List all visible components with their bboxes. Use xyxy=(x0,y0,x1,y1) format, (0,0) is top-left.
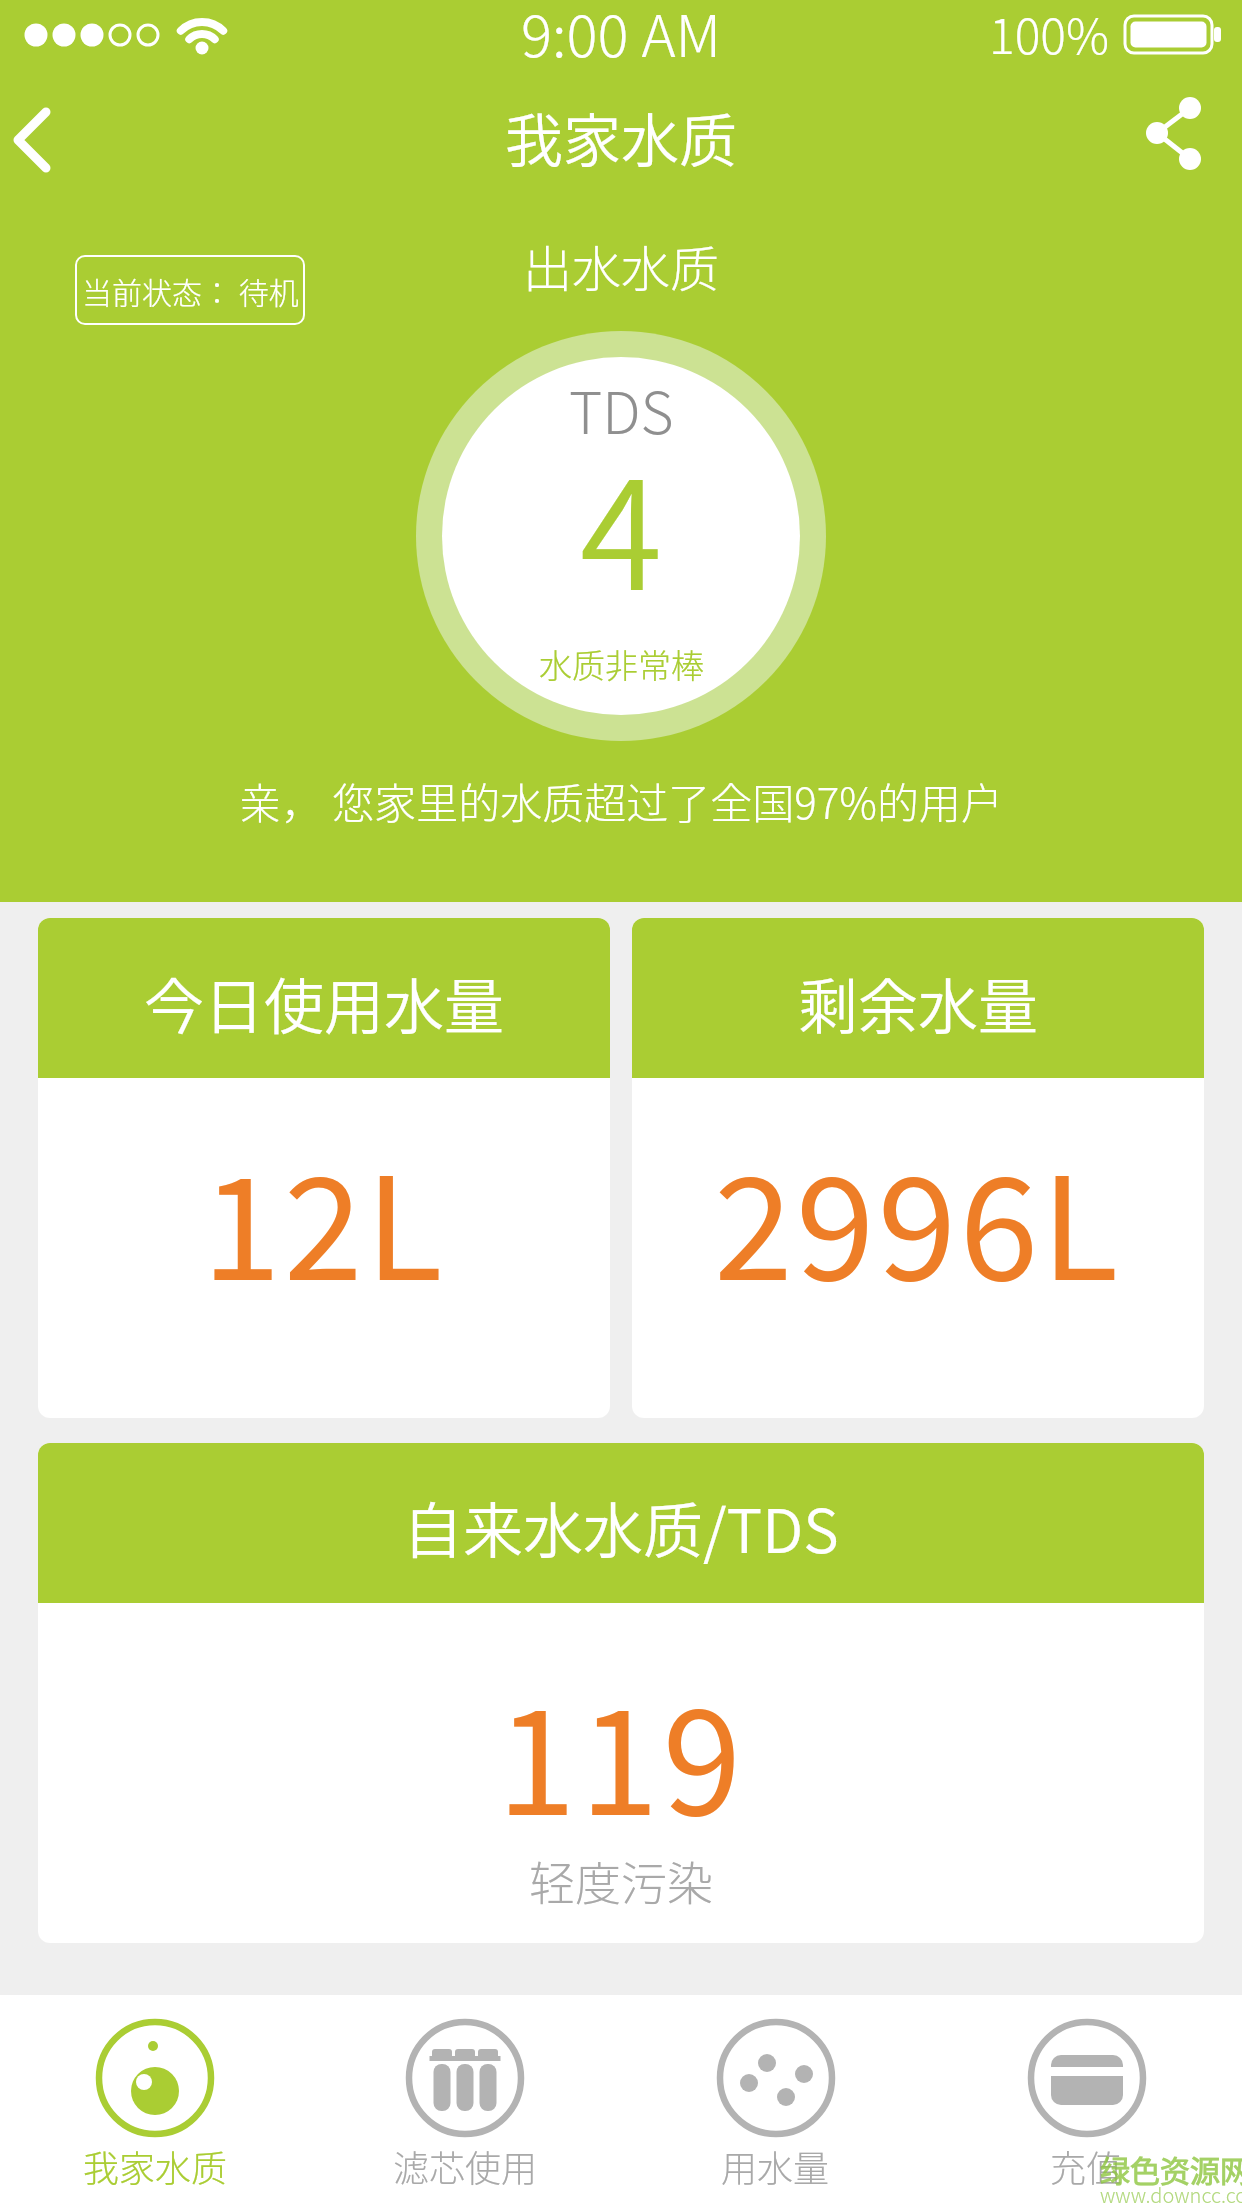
staticText: 100% xyxy=(989,0,1110,68)
staticText: 用水量 xyxy=(721,2140,830,2192)
staticText: 我家水质 xyxy=(83,2140,228,2192)
button[interactable] xyxy=(6,94,92,184)
button[interactable]: 用水量 xyxy=(620,1995,931,2208)
staticText: 今日使用水量 xyxy=(144,959,504,1046)
staticText: 12L xyxy=(202,1115,446,1321)
staticText: 119 xyxy=(497,1650,746,1856)
staticText: 2996L xyxy=(714,1115,1122,1321)
staticText: 当前状态： 待机 xyxy=(82,269,299,312)
button[interactable]: 滤芯使用 xyxy=(310,1995,620,2208)
button[interactable]: 我家水质 xyxy=(0,1995,310,2208)
staticText: 我家水质 xyxy=(505,95,738,179)
button[interactable]: 今日使用水量 xyxy=(38,918,610,1418)
staticText: 充值 xyxy=(1050,2140,1123,2192)
button[interactable]: 充值 xyxy=(931,1995,1242,2208)
staticText: 亲， 您家里的水质超过了全国97%的用户 xyxy=(239,770,1003,831)
staticText: 出水水质 xyxy=(523,230,720,301)
staticText: 滤芯使用 xyxy=(393,2140,538,2192)
button[interactable]: 剩余水量 xyxy=(632,918,1204,1418)
staticText: 4 xyxy=(580,416,663,633)
button[interactable]: 当前状态： 待机 xyxy=(75,255,305,325)
staticText: 轻度污染 xyxy=(529,1847,713,1914)
staticText: 自来水水质/TDS xyxy=(403,1483,839,1570)
staticText: 9:00 AM xyxy=(521,0,722,74)
staticText: 剩余水量 xyxy=(798,959,1038,1046)
button[interactable] xyxy=(1130,88,1220,182)
staticText: TDS xyxy=(569,368,674,451)
button[interactable]: 自来水水质/TDS xyxy=(38,1443,1204,1943)
staticText: 绿色资源网 xyxy=(1100,2147,1242,2190)
staticText: www.downcc.com xyxy=(1100,2180,1242,2208)
staticText: 水质非常棒 xyxy=(539,640,704,688)
